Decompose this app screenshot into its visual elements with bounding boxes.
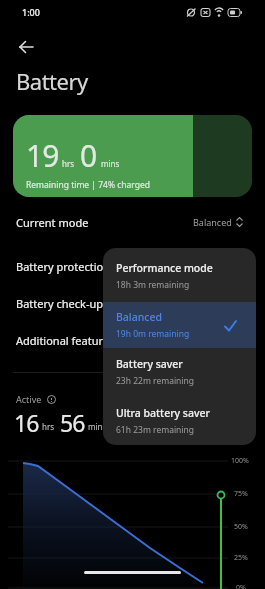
button[interactable]: Current mode: [0, 208, 265, 236]
staticText: 19h 0m remaining: [116, 328, 190, 340]
staticText: Battery check-up: [16, 296, 104, 311]
staticText: 18h 3m remaining: [116, 279, 190, 291]
staticText: Active: [16, 393, 42, 405]
staticText: Battery protection mode: [16, 259, 143, 274]
staticText: mins: [101, 158, 120, 169]
staticText: 19: [26, 135, 59, 176]
staticText: Ultra battery saver: [116, 406, 210, 420]
staticText: hrs: [62, 158, 75, 169]
staticText: 50%: [234, 522, 248, 532]
staticText: 23h 22m remaining: [116, 375, 195, 387]
staticText: hrs: [42, 421, 55, 432]
button[interactable]: Battery saver: [103, 348, 256, 396]
staticText: 75%: [234, 489, 248, 499]
staticText: 61h 23m remaining: [116, 424, 195, 436]
staticText: Balanced: [116, 310, 162, 324]
staticText: 0%: [236, 583, 246, 589]
staticText: 100%: [231, 456, 249, 466]
button[interactable]: Balanced: [103, 302, 256, 348]
button[interactable]: 19: [13, 115, 252, 197]
button[interactable]: [12, 36, 40, 58]
staticText: Battery: [16, 66, 88, 96]
staticText: Balanced: [193, 216, 232, 228]
staticText: mins: [88, 421, 107, 432]
staticText: 56: [60, 407, 85, 438]
button[interactable]: Performance mode: [103, 248, 256, 302]
staticText: Current mode: [16, 215, 89, 230]
staticText: Performance mode: [116, 261, 213, 275]
staticText: Battery saver: [116, 357, 183, 371]
staticText: 1:00: [22, 6, 40, 18]
staticText: Remaining time | 74% charged: [26, 179, 151, 191]
staticText: 16: [14, 407, 39, 438]
staticText: Additional features: [16, 333, 115, 348]
button[interactable]: Ultra battery saver: [103, 396, 256, 445]
staticText: 25%: [234, 553, 248, 563]
staticText: 0: [80, 135, 98, 176]
